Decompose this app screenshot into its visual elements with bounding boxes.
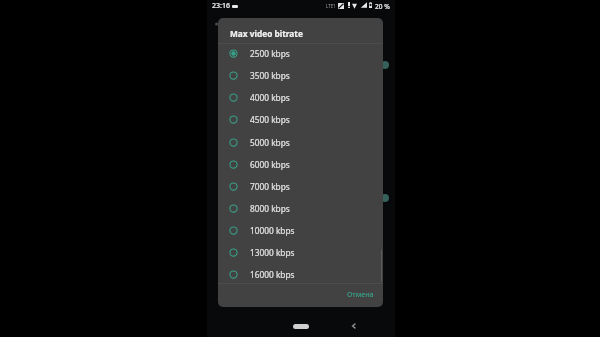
button[interactable]: 4000 kbps (218, 86, 383, 108)
button[interactable]: Отмена (338, 285, 383, 305)
staticText: Max video bitrate (230, 28, 303, 39)
button[interactable]: 3500 kbps (218, 64, 383, 86)
staticText: Отмена (347, 290, 374, 300)
staticText: 16000 kbps (250, 269, 295, 280)
staticText: 3500 kbps (250, 70, 290, 81)
button[interactable]: 5000 kbps (218, 131, 383, 153)
button[interactable]: Max video bitrate (218, 18, 383, 43)
button[interactable]: 7000 kbps (218, 175, 383, 197)
staticText: 8000 kbps (250, 203, 290, 214)
staticText: 2500 kbps (250, 48, 290, 59)
staticText: 4000 kbps (250, 92, 290, 103)
button[interactable]: 2500 kbps (218, 42, 383, 64)
staticText: 13000 kbps (250, 247, 295, 258)
staticText: 10000 kbps (250, 225, 295, 236)
button[interactable]: 16000 kbps (218, 263, 383, 285)
staticText: 23:16 (212, 1, 230, 11)
button[interactable]: 10000 kbps (218, 219, 383, 241)
staticText: LTE1 (326, 3, 336, 9)
staticText: 6000 kbps (250, 159, 290, 170)
staticText: 5000 kbps (250, 137, 290, 148)
staticText: 20 % (375, 2, 390, 11)
staticText: 4500 kbps (250, 114, 290, 125)
staticText: 7000 kbps (250, 181, 290, 192)
button[interactable]: 13000 kbps (218, 241, 383, 263)
button[interactable]: 6000 kbps (218, 153, 383, 175)
button[interactable]: 4500 kbps (218, 108, 383, 130)
button[interactable]: Home (293, 324, 309, 329)
button[interactable]: Back (348, 320, 360, 332)
button[interactable]: 8000 kbps (218, 197, 383, 219)
